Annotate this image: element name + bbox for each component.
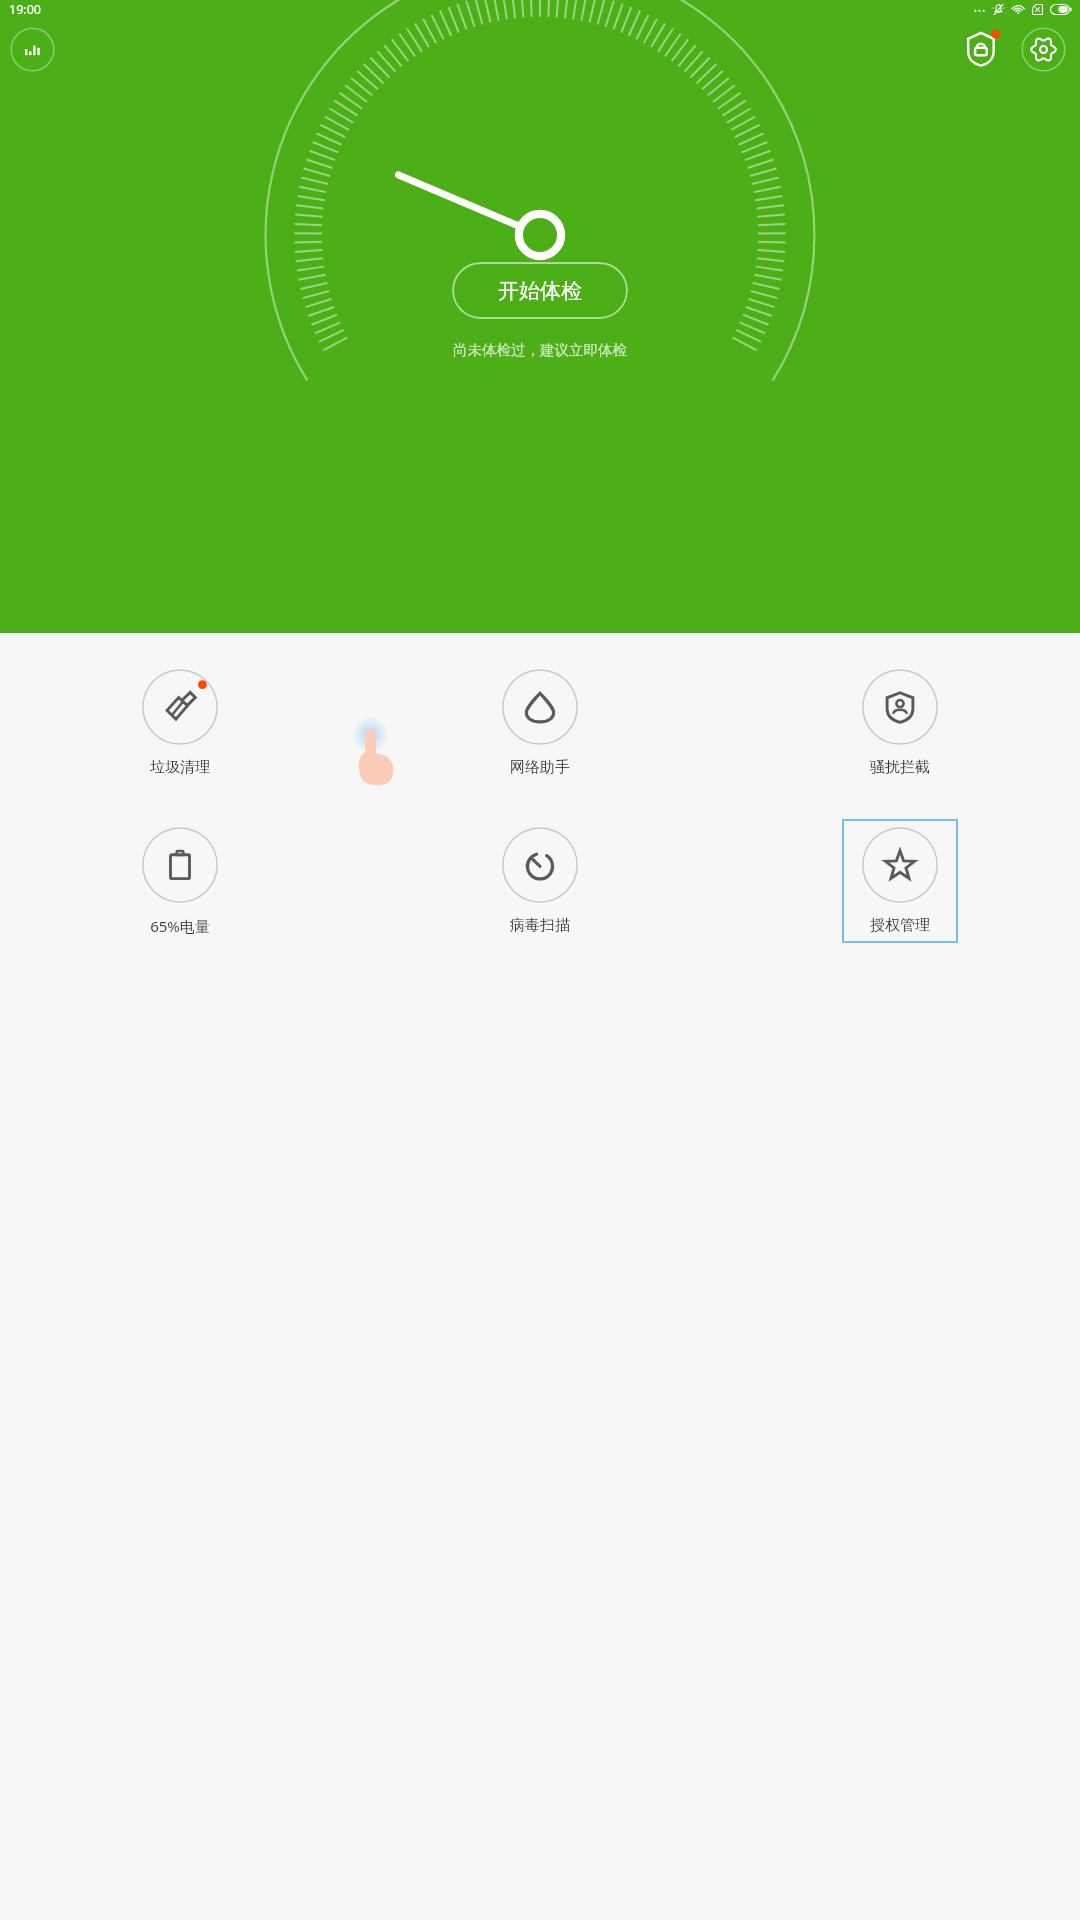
button[interactable]: Settings: [1021, 27, 1066, 72]
button[interactable]: 病毒扫描: [482, 819, 598, 943]
button[interactable]: 授权管理: [842, 819, 958, 943]
staticText: 尚未体检过，建议立即体检: [453, 341, 627, 359]
staticText: 病毒扫描: [510, 916, 570, 935]
staticText: 骚扰拦截: [870, 758, 930, 777]
staticText: 垃圾清理: [150, 758, 210, 777]
button[interactable]: Statistics: [10, 27, 55, 72]
button[interactable]: 骚扰拦截: [842, 661, 958, 785]
staticText: 65%电量: [150, 916, 210, 936]
staticText: 开始体检: [498, 278, 582, 304]
button[interactable]: Secure apps: [957, 23, 1009, 75]
button[interactable]: 垃圾清理: [122, 661, 238, 785]
button[interactable]: 开始体检: [452, 262, 628, 319]
button[interactable]: 65%电量: [122, 819, 238, 944]
staticText: 网络助手: [510, 758, 570, 777]
button[interactable]: 网络助手: [482, 661, 598, 785]
staticText: 19:00: [9, 1, 41, 18]
staticText: 授权管理: [870, 916, 930, 935]
